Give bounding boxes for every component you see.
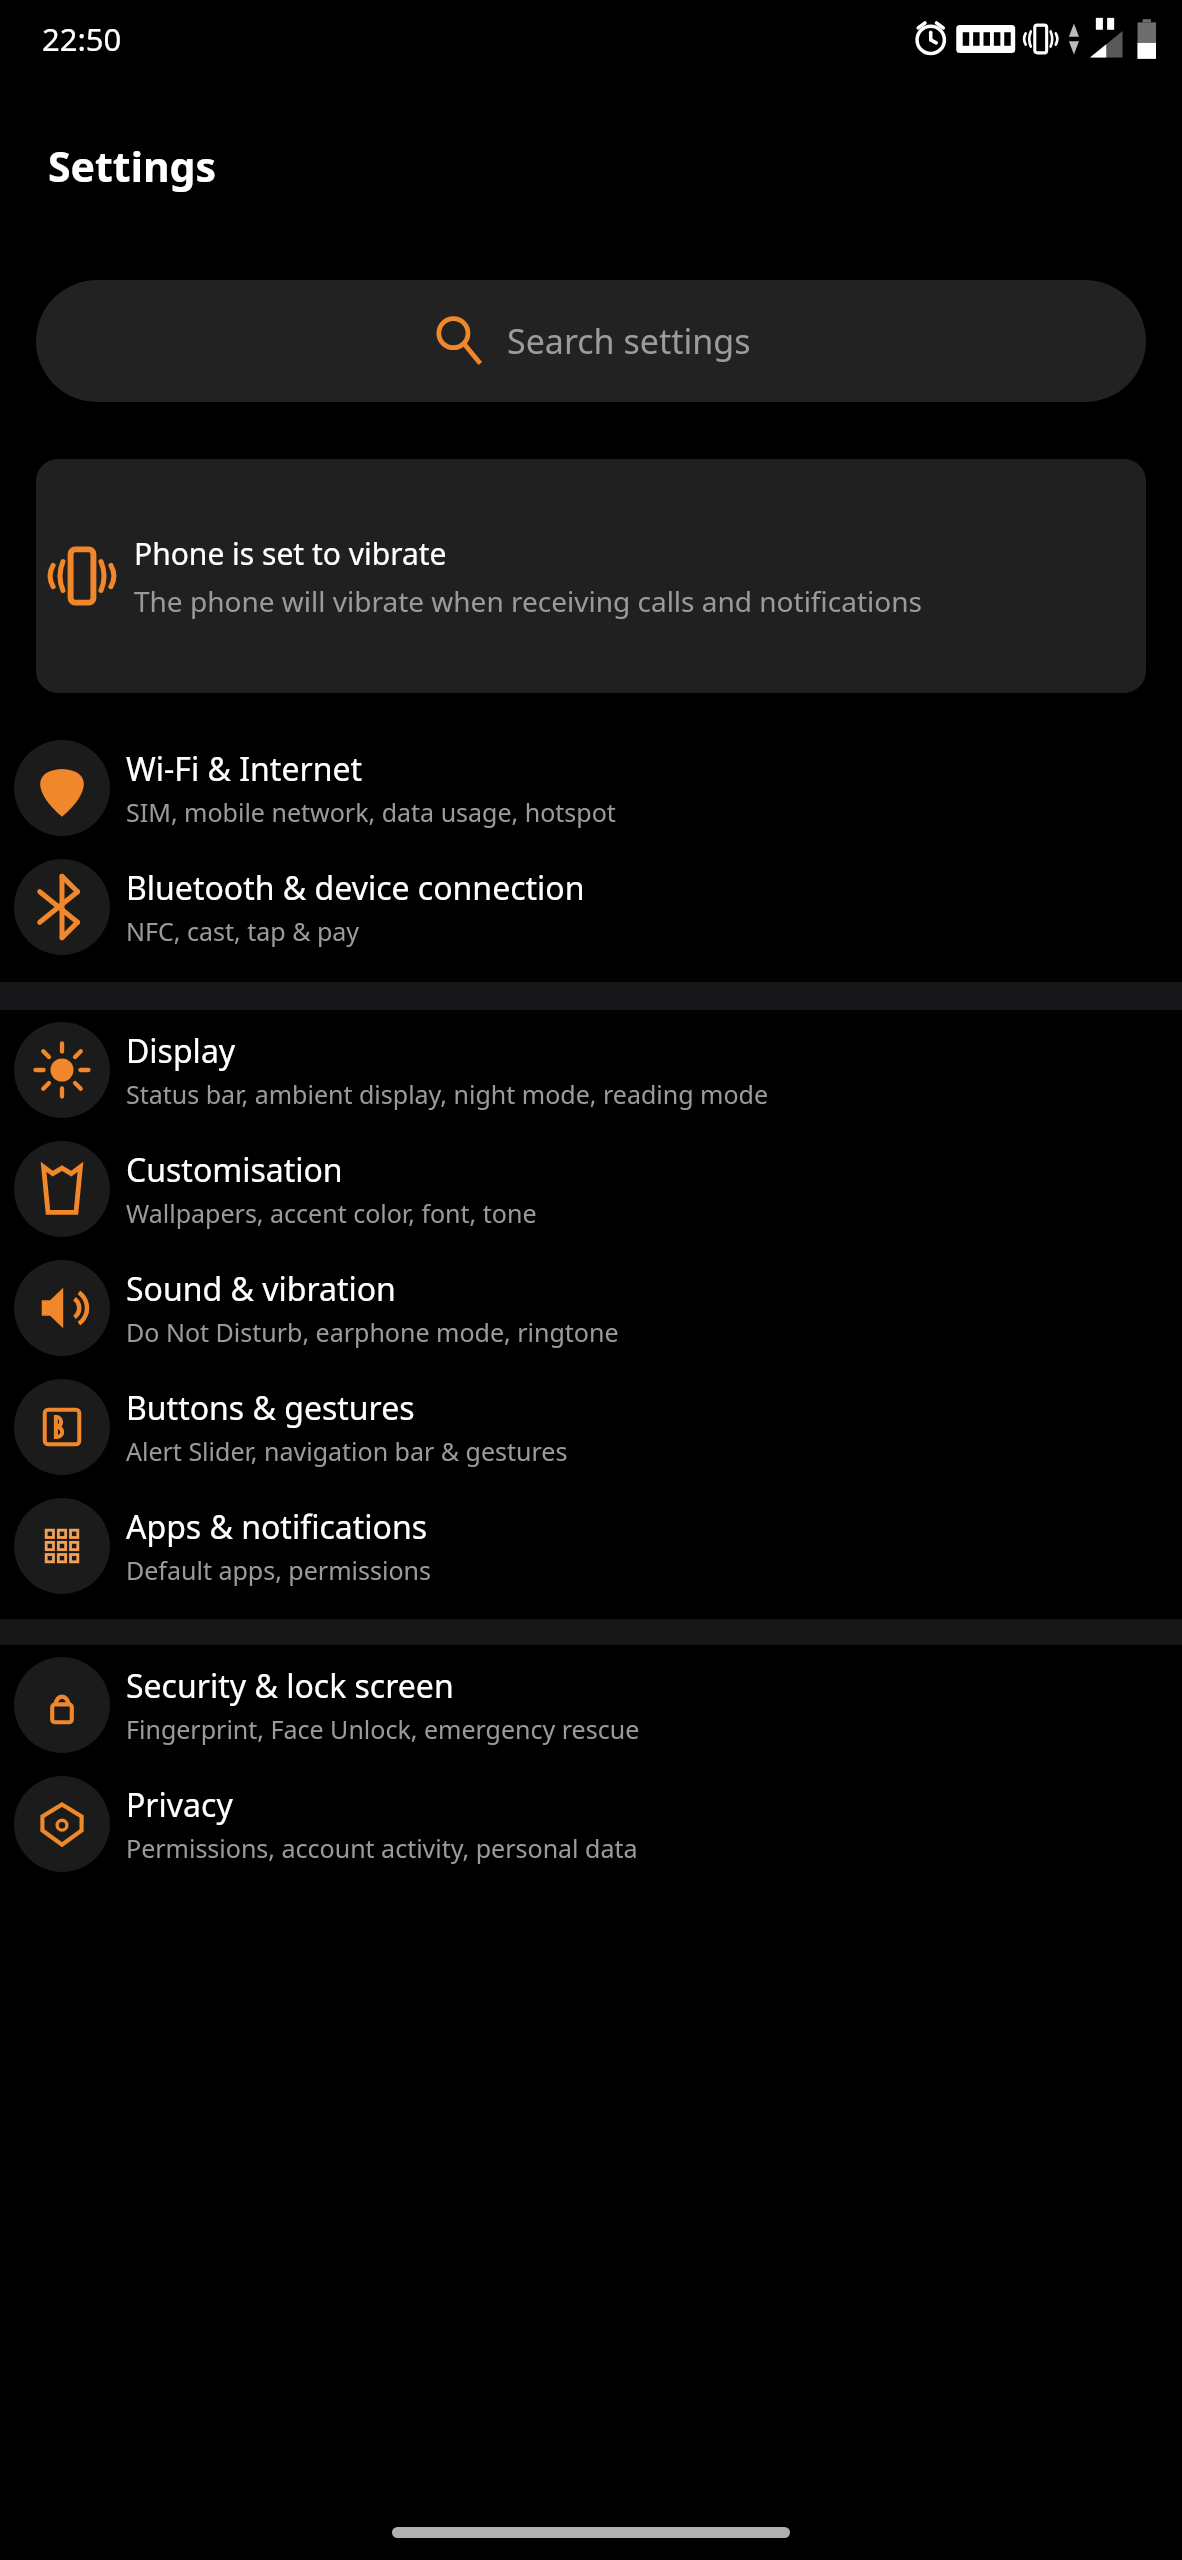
button[interactable]: Phone is set to vibrate	[36, 459, 1146, 693]
button[interactable]: Display	[0, 1010, 1182, 1129]
staticText: Bluetooth & device connection	[126, 866, 585, 910]
staticText: Status bar, ambient display, night mode,…	[126, 1077, 769, 1111]
button[interactable]: Apps & notifications	[0, 1486, 1182, 1605]
button[interactable]: Sound & vibration	[0, 1248, 1182, 1367]
button[interactable]: Security & lock screen	[0, 1645, 1182, 1764]
other: Home	[392, 2527, 790, 2538]
button[interactable]: Customisation	[0, 1129, 1182, 1248]
staticText: The phone will vibrate when receiving ca…	[134, 582, 922, 620]
staticText: Buttons & gestures	[126, 1386, 415, 1430]
staticText: Do Not Disturb, earphone mode, ringtone	[126, 1315, 619, 1349]
staticText: Sound & vibration	[126, 1267, 396, 1311]
staticText: Wi-Fi & Internet	[126, 747, 363, 791]
button[interactable]: Bluetooth & device connection	[0, 847, 1182, 966]
button[interactable]: Search settings	[36, 280, 1146, 402]
staticText: Security & lock screen	[126, 1664, 454, 1708]
staticText: Settings	[48, 138, 217, 194]
button[interactable]: Buttons & gestures	[0, 1367, 1182, 1486]
staticText: Privacy	[126, 1783, 233, 1827]
staticText: Fingerprint, Face Unlock, emergency resc…	[126, 1712, 640, 1746]
staticText: 22:50	[42, 18, 122, 60]
staticText: Customisation	[126, 1148, 343, 1192]
button[interactable]: Privacy	[0, 1764, 1182, 1883]
staticText: Search settings	[507, 318, 751, 364]
staticText: Alert Slider, navigation bar & gestures	[126, 1434, 568, 1468]
staticText: SIM, mobile network, data usage, hotspot	[126, 795, 616, 829]
staticText: Default apps, permissions	[126, 1553, 431, 1587]
button[interactable]: Wi-Fi & Internet	[0, 728, 1182, 847]
staticText: Display	[126, 1029, 236, 1073]
staticText: Phone is set to vibrate	[134, 533, 447, 574]
staticText: Wallpapers, accent color, font, tone	[126, 1196, 537, 1230]
staticText: Permissions, account activity, personal …	[126, 1831, 638, 1865]
staticText: Apps & notifications	[126, 1505, 427, 1549]
staticText: NFC, cast, tap & pay	[126, 914, 360, 948]
